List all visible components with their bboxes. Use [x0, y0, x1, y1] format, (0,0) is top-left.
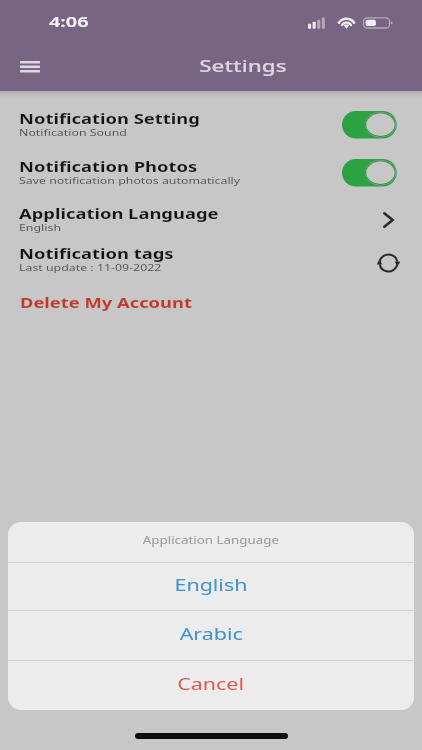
staticText: 4:06 — [49, 11, 89, 31]
staticText: Settings — [199, 54, 288, 77]
button[interactable]: Notification Photos — [0, 156, 422, 190]
staticText: Save notification photos automatically — [19, 174, 241, 187]
staticText: Cancel — [177, 672, 245, 694]
button[interactable]: Cancel — [8, 661, 414, 710]
staticText: Last update : 11-09-2022 — [19, 261, 162, 274]
button[interactable]: Toggle — [342, 159, 397, 187]
staticText: English — [174, 573, 248, 595]
button[interactable]: Delete My Account — [0, 290, 422, 314]
button[interactable]: Notification tags — [0, 243, 422, 277]
staticText: Notification Sound — [19, 126, 127, 139]
button[interactable]: Menu — [12, 50, 48, 86]
staticText: Notification Setting — [19, 109, 200, 128]
button[interactable]: Open — [380, 204, 397, 236]
staticText: Notification tags — [19, 244, 174, 263]
button[interactable]: Toggle — [342, 111, 397, 139]
staticText: Application Language — [143, 533, 280, 547]
button[interactable]: Application Language — [0, 203, 422, 237]
staticText: Arabic — [180, 622, 243, 644]
staticText: Delete My Account — [20, 293, 193, 312]
staticText: Application Language — [19, 204, 219, 223]
button[interactable]: English — [8, 563, 414, 610]
button[interactable]: Notification Setting — [0, 108, 422, 142]
button[interactable]: Arabic — [8, 611, 414, 660]
staticText: English — [19, 221, 62, 234]
staticText: Notification Photos — [19, 157, 198, 176]
button[interactable]: Refresh — [380, 244, 397, 276]
